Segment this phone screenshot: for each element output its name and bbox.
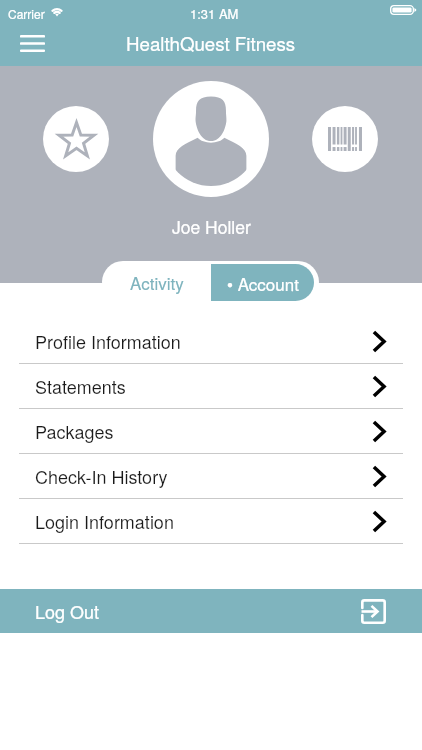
button[interactable]: Check-In History bbox=[0, 454, 422, 498]
button[interactable]: Activity bbox=[102, 261, 211, 303]
button[interactable]: Membership barcode bbox=[312, 106, 378, 172]
staticText: Joe Holler bbox=[172, 214, 251, 239]
staticText: HealthQuest Fitness bbox=[126, 30, 296, 57]
button[interactable]: Profile Information bbox=[0, 319, 422, 363]
button[interactable]: Statements bbox=[0, 364, 422, 408]
staticText: Login Information bbox=[35, 508, 174, 534]
staticText: Profile Information bbox=[35, 328, 181, 354]
button[interactable]: Menu bbox=[10, 29, 54, 57]
staticText: Activity bbox=[130, 270, 184, 294]
staticText: Packages bbox=[35, 418, 114, 444]
button[interactable]: Login Information bbox=[0, 499, 422, 543]
button[interactable]: Packages bbox=[0, 409, 422, 453]
staticText: • Account bbox=[227, 271, 299, 295]
staticText: Statements bbox=[35, 373, 126, 399]
button[interactable]: • Account bbox=[211, 264, 314, 301]
button[interactable]: Log Out bbox=[0, 589, 422, 633]
staticText: 1:31 AM bbox=[190, 4, 239, 23]
button[interactable]: Favorites bbox=[43, 106, 109, 172]
staticText: Log Out bbox=[35, 598, 100, 624]
button[interactable]: Profile photo bbox=[153, 81, 269, 197]
staticText: Carrier bbox=[8, 5, 45, 22]
staticText: Check-In History bbox=[35, 463, 168, 489]
